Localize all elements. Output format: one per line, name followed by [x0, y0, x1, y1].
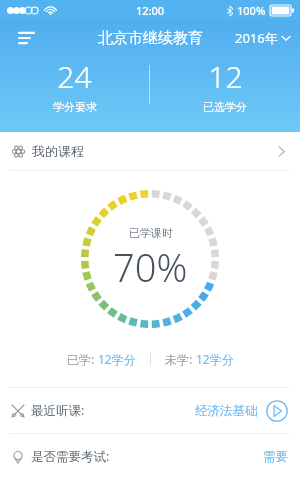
staticText: 最近听课: — [31, 402, 85, 419]
button[interactable]: 我的课程 — [0, 132, 300, 170]
staticText: 需要 — [263, 449, 288, 465]
staticText: 2016年 — [235, 29, 278, 47]
button[interactable]: 已学: — [67, 351, 136, 367]
button[interactable]: 是否需要考试: — [0, 434, 300, 479]
staticText: 24 — [57, 56, 92, 97]
staticText: 经济法基础 — [195, 403, 258, 419]
staticText: 是否需要考试: — [31, 448, 110, 465]
staticText: 已选学分 — [203, 100, 247, 114]
button[interactable]: 24 — [0, 56, 149, 114]
staticText: 100% — [237, 3, 266, 18]
staticText: 已学课时 — [129, 226, 173, 240]
button[interactable]: Play — [266, 400, 288, 422]
button[interactable]: 2016年 — [235, 29, 290, 47]
staticText: 我的课程 — [32, 143, 84, 159]
staticText: 12:00 — [136, 3, 165, 18]
button[interactable]: Menu — [10, 21, 44, 55]
staticText: 12学分 — [98, 351, 136, 367]
button[interactable]: 12 — [150, 56, 300, 114]
button[interactable]: 未学: — [165, 351, 234, 367]
staticText: 70% — [113, 241, 188, 293]
staticText: 已学: — [67, 351, 98, 367]
staticText: 学分要求 — [53, 100, 97, 114]
button[interactable]: 最近听课: — [0, 388, 300, 433]
staticText: 12 — [208, 56, 243, 97]
staticText: 12学分 — [196, 351, 234, 367]
staticText: 北京市继续教育 — [98, 29, 203, 48]
staticText: 未学: — [165, 351, 196, 367]
